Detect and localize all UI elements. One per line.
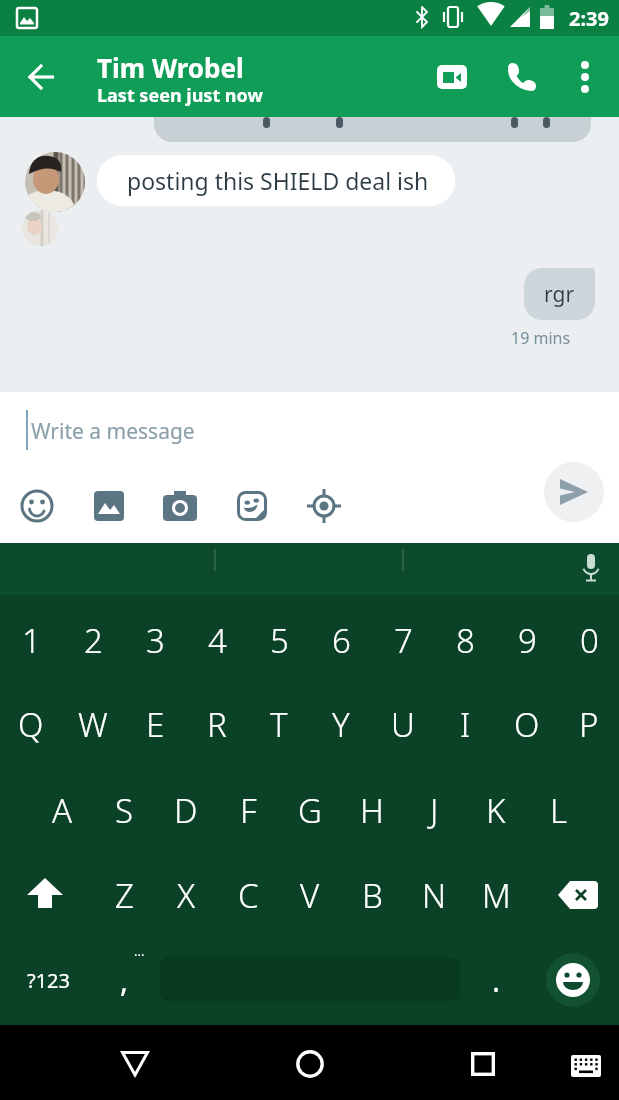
staticText: Tim Wrobel <box>97 50 244 85</box>
button[interactable]: . <box>468 945 524 1015</box>
button[interactable]: 2 <box>64 600 122 680</box>
staticText: 6 <box>332 618 351 663</box>
staticText: posting this SHIELD deal ish <box>127 165 429 196</box>
button[interactable]: 1 <box>2 600 60 680</box>
staticText: W <box>78 702 108 747</box>
staticText: B <box>362 873 383 918</box>
button[interactable] <box>233 487 271 525</box>
staticText: ... <box>134 942 145 960</box>
button[interactable]: 7 <box>374 600 432 680</box>
button[interactable] <box>500 55 544 99</box>
button[interactable] <box>545 862 611 928</box>
button[interactable]: U <box>374 684 432 764</box>
button[interactable]: , <box>96 945 152 1015</box>
staticText: 1 <box>22 618 41 663</box>
button[interactable] <box>562 1042 610 1090</box>
button[interactable]: V <box>281 855 339 935</box>
staticText: A <box>52 788 73 833</box>
button[interactable]: K <box>467 770 525 850</box>
staticText: 0 <box>580 618 599 663</box>
button[interactable]: 0 <box>560 600 618 680</box>
button[interactable] <box>108 1037 162 1091</box>
button[interactable]: 6 <box>312 600 370 680</box>
button[interactable]: E <box>126 684 184 764</box>
button[interactable]: Z <box>95 855 153 935</box>
staticText: Y <box>332 702 350 747</box>
button[interactable]: R <box>188 684 246 764</box>
button[interactable]: H <box>343 770 401 850</box>
button[interactable]: Y <box>312 684 370 764</box>
button[interactable] <box>544 462 604 522</box>
button[interactable] <box>563 55 607 99</box>
button[interactable] <box>10 860 80 930</box>
staticText: 8 <box>456 618 475 663</box>
button[interactable]: W <box>64 684 122 764</box>
staticText: 2 <box>84 618 103 663</box>
staticText: G <box>298 788 322 833</box>
staticText: 2:39 <box>569 5 609 32</box>
staticText: 7 <box>394 618 413 663</box>
button[interactable]: I <box>436 684 494 764</box>
staticText: Last seen just now <box>97 83 263 108</box>
staticText: K <box>486 788 506 833</box>
button[interactable]: O <box>498 684 556 764</box>
button[interactable]: B <box>343 855 401 935</box>
button[interactable] <box>305 487 343 525</box>
button[interactable]: 4 <box>188 600 246 680</box>
staticText: L <box>550 788 567 833</box>
staticText: S <box>115 788 134 833</box>
button[interactable]: A <box>33 770 91 850</box>
button[interactable] <box>570 548 612 590</box>
staticText: Z <box>115 873 134 918</box>
staticText: 3 <box>146 618 165 663</box>
button[interactable] <box>161 487 199 525</box>
button[interactable]: F <box>219 770 277 850</box>
staticText: V <box>300 873 320 918</box>
staticText: 9 <box>518 618 537 663</box>
button[interactable]: D <box>157 770 215 850</box>
staticText: F <box>240 788 257 833</box>
button[interactable]: 9 <box>498 600 556 680</box>
button[interactable]: J <box>405 770 463 850</box>
staticText: . <box>492 960 501 1001</box>
staticText: E <box>146 702 165 747</box>
staticText: T <box>270 702 288 747</box>
button[interactable]: T <box>250 684 308 764</box>
button[interactable] <box>18 487 56 525</box>
button[interactable]: P <box>560 684 618 764</box>
button[interactable]: 3 <box>126 600 184 680</box>
button[interactable] <box>546 953 600 1007</box>
button[interactable]: X <box>157 855 215 935</box>
button[interactable]: L <box>529 770 587 850</box>
button[interactable]: N <box>405 855 463 935</box>
staticText: I <box>460 702 471 747</box>
button[interactable]: S <box>95 770 153 850</box>
staticText: J <box>430 788 439 833</box>
button[interactable] <box>430 55 474 99</box>
staticText: ?123 <box>27 967 70 994</box>
button[interactable] <box>90 487 128 525</box>
staticText: O <box>514 702 540 747</box>
staticText: 5 <box>270 618 289 663</box>
button[interactable] <box>456 1037 510 1091</box>
button[interactable]: 8 <box>436 600 494 680</box>
button[interactable]: M <box>467 855 525 935</box>
button[interactable]: ?123 <box>10 945 86 1015</box>
staticText: rgr <box>544 280 575 309</box>
button[interactable] <box>283 1037 337 1091</box>
staticText: P <box>579 702 599 747</box>
button[interactable] <box>20 55 64 99</box>
staticText: , <box>120 960 129 1001</box>
staticText: Q <box>18 702 44 747</box>
button[interactable]: Q <box>2 684 60 764</box>
staticText: 4 <box>208 618 227 663</box>
button[interactable]: 5 <box>250 600 308 680</box>
staticText: R <box>207 702 227 747</box>
staticText: X <box>177 873 196 918</box>
staticText: C <box>238 873 259 918</box>
button[interactable]: G <box>281 770 339 850</box>
staticText: H <box>360 788 384 833</box>
button[interactable]: C <box>219 855 277 935</box>
staticText: N <box>422 873 447 918</box>
